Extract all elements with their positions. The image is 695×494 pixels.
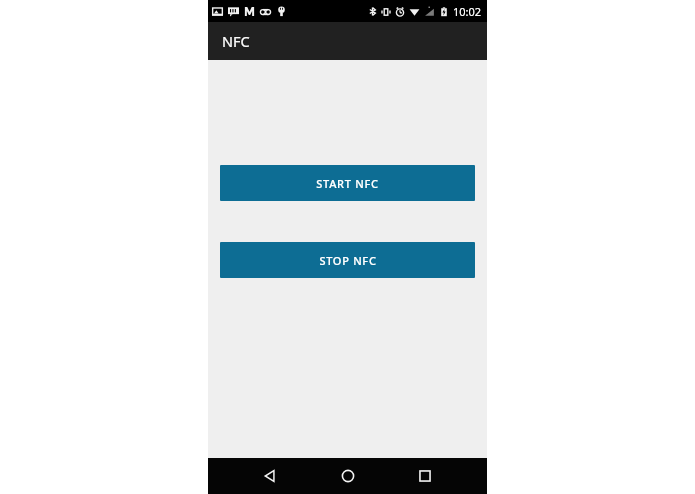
staticText: START NFC: [316, 176, 379, 191]
staticText: STOP NFC: [319, 253, 377, 268]
staticText: NFC: [222, 31, 250, 51]
button[interactable]: START NFC: [220, 165, 475, 201]
staticText: 10:02: [453, 4, 482, 19]
button[interactable]: Home: [330, 458, 366, 494]
button[interactable]: STOP NFC: [220, 242, 475, 278]
button[interactable]: Back: [252, 458, 288, 494]
button[interactable]: Recent apps: [407, 458, 443, 494]
